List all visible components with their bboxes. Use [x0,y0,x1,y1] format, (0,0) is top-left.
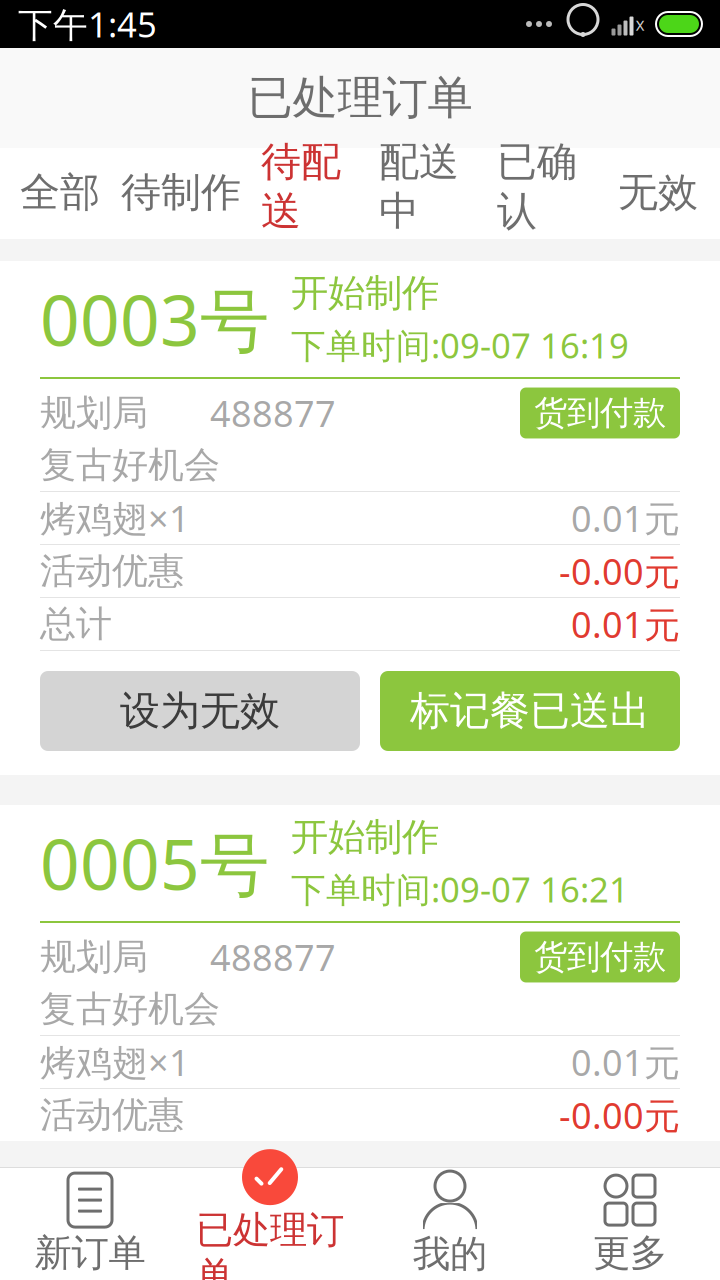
staticText: 新订单 [34,1230,145,1276]
staticText: 0.01元 [571,1038,680,1086]
staticText: 已处理订单 [196,1207,344,1280]
staticText: 货到付款 [534,936,666,977]
staticText: 0.01元 [571,600,680,648]
staticText: 烤鸡翅×1 [40,494,190,542]
staticText: 设为无效 [120,686,280,735]
button[interactable]: 我的 [360,1168,540,1280]
staticText: 待制作 [121,168,241,217]
button[interactable]: 标记餐已送出 [380,671,680,751]
staticText: 活动优惠 [40,549,184,593]
button[interactable]: 已处理订单 [180,1168,360,1280]
staticText: 复古好机会 [40,987,220,1031]
staticText: 488877 [210,933,336,981]
staticText: 烤鸡翅×1 [40,1038,190,1086]
button[interactable]: 新订单 [0,1168,180,1280]
staticText: 活动优惠 [40,1093,184,1137]
button[interactable]: 已确认 [478,148,596,239]
staticText: 待配送 [261,137,341,236]
staticText: 开始制作 [291,270,439,316]
staticText: x [635,12,644,35]
button[interactable]: 配送中 [360,148,478,239]
button[interactable]: 待制作 [120,148,242,239]
staticText: -0.00元 [559,1091,680,1139]
button[interactable]: 更多 [540,1168,720,1280]
staticText: 标记餐已送出 [410,686,650,735]
staticText: 开始制作 [291,814,439,860]
button[interactable]: 待配送 [242,148,360,239]
staticText: 货到付款 [534,392,666,433]
staticText: 0.01元 [571,494,680,542]
staticText: 已确认 [497,137,577,236]
staticText: 规划局 [40,391,148,435]
staticText: 规划局 [40,935,148,979]
staticText: 复古好机会 [40,443,220,487]
button[interactable]: 设为无效 [40,671,360,751]
staticText: 已处理订单 [247,70,472,126]
staticText: -0.00元 [559,547,680,595]
staticText: 下单时间:09-07 16:21 [291,866,629,912]
staticText: 更多 [593,1230,667,1276]
staticText: 0003号 [40,273,269,365]
staticText: 总计 [40,602,112,646]
staticText: 配送中 [379,137,459,236]
staticText: 下单时间:09-07 16:19 [291,322,629,368]
button[interactable]: 无效 [596,148,720,239]
staticText: 488877 [210,389,336,437]
staticText: 0005号 [40,817,269,909]
staticText: 我的 [413,1231,487,1277]
staticText: 全部 [20,168,100,217]
staticText: 无效 [618,168,698,217]
button[interactable]: 全部 [0,148,120,239]
staticText: 下午1:45 [18,1,157,47]
